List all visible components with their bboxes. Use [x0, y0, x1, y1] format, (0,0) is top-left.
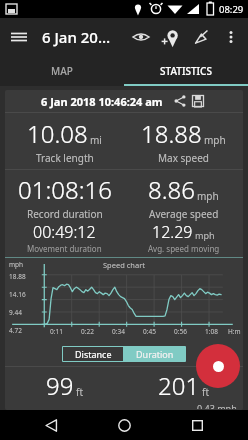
- button[interactable]: Menu: [0, 18, 38, 56]
- staticText: ft: [202, 385, 210, 399]
- staticText: Max speed: [158, 151, 209, 165]
- staticText: MAP: [51, 64, 73, 78]
- staticText: 6 Jan 20…: [42, 27, 111, 47]
- staticText: mi: [90, 133, 102, 147]
- button[interactable]: MAP: [0, 56, 124, 86]
- button[interactable]: Show: [126, 22, 156, 52]
- button[interactable]: More options: [216, 22, 246, 52]
- staticText: 0:56: [165, 327, 196, 336]
- staticText: mph: [195, 229, 215, 241]
- staticText: 8.86: [148, 173, 195, 206]
- button[interactable]: Home: [102, 410, 146, 440]
- staticText: 10.08: [27, 117, 88, 150]
- staticText: 1:08: [196, 327, 227, 336]
- button[interactable]: STATISTICS: [124, 56, 248, 86]
- button[interactable]: Share: [171, 92, 189, 110]
- staticText: 0:11: [41, 327, 72, 336]
- staticText: Track length: [36, 151, 94, 165]
- staticText: 01:08:16: [18, 173, 112, 206]
- staticText: mph: [204, 133, 226, 147]
- button[interactable]: Add waypoint: [156, 22, 186, 52]
- staticText: 12.29: [152, 221, 193, 243]
- staticText: 0:45: [134, 327, 165, 336]
- staticText: ft: [76, 385, 84, 399]
- staticText: Speed chart: [103, 260, 145, 270]
- button[interactable]: Duration: [124, 346, 186, 362]
- staticText: mph: [9, 260, 24, 269]
- staticText: 00:49:12: [33, 221, 96, 243]
- staticText: 6 Jan 2018 10:46:24 am: [41, 94, 163, 109]
- staticText: 18.88: [141, 117, 202, 150]
- staticText: Duration: [136, 348, 174, 360]
- staticText: 99: [46, 369, 74, 402]
- staticText: 18.88: [9, 272, 26, 281]
- staticText: 0.43 mph: [197, 402, 237, 409]
- button[interactable]: Save: [189, 92, 207, 110]
- staticText: H:m: [228, 327, 241, 336]
- staticText: Avg. speed moving: [148, 243, 220, 254]
- staticText: 0:34: [103, 327, 134, 336]
- button[interactable]: Clear: [186, 22, 216, 52]
- staticText: 201: [158, 369, 200, 402]
- staticText: mph: [197, 189, 219, 203]
- staticText: Record duration: [27, 207, 103, 221]
- button[interactable]: Distance: [62, 346, 124, 362]
- staticText: Distance: [75, 348, 112, 360]
- button[interactable]: Record: [196, 344, 240, 388]
- button[interactable]: Recents: [175, 410, 219, 440]
- staticText: STATISTICS: [160, 64, 212, 78]
- staticText: Average speed: [149, 207, 219, 221]
- staticText: 14.16: [9, 290, 26, 299]
- button[interactable]: Back: [29, 410, 73, 440]
- staticText: 08:29: [219, 3, 244, 16]
- staticText: 4.72: [9, 326, 22, 335]
- staticText: 9.44: [9, 308, 22, 317]
- staticText: 0:22: [72, 327, 103, 336]
- staticText: Movement duration: [27, 243, 102, 254]
